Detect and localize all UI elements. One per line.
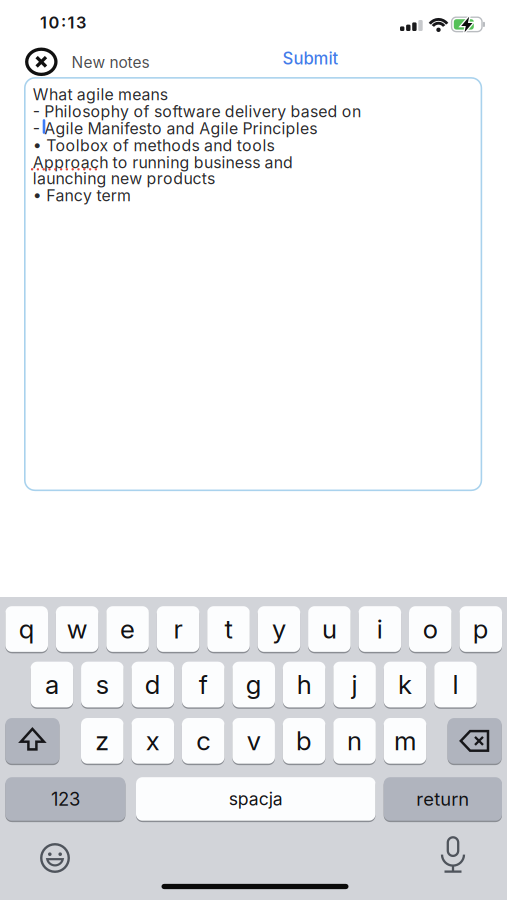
button[interactable]: e — [106, 606, 149, 652]
button[interactable]: s — [81, 662, 124, 707]
staticText: j — [352, 669, 358, 700]
staticText: s — [96, 669, 109, 700]
staticText: Approach to running business and — [33, 153, 293, 172]
button[interactable]: o — [409, 606, 452, 652]
button[interactable]: h — [283, 662, 325, 707]
button[interactable]: l — [434, 662, 477, 707]
staticText: c — [196, 725, 210, 757]
button[interactable]: m — [384, 718, 426, 764]
staticText: w — [67, 613, 88, 645]
staticText: launching new products — [33, 169, 215, 188]
staticText: x — [146, 725, 160, 757]
staticText: l — [452, 669, 458, 700]
staticText: What agile means — [33, 85, 168, 104]
button[interactable]: r — [157, 606, 199, 652]
staticText: o — [423, 613, 438, 645]
button[interactable]: y — [258, 606, 300, 652]
staticText: i — [377, 613, 383, 645]
button[interactable]: b — [283, 718, 325, 764]
button[interactable]: u — [308, 606, 351, 652]
button[interactable]: c — [182, 718, 224, 764]
staticText: f — [199, 669, 208, 700]
button[interactable]: Dictate — [436, 836, 470, 873]
button[interactable]: f — [182, 662, 225, 707]
staticText: spacja — [229, 788, 283, 810]
button[interactable]: j — [333, 662, 376, 707]
staticText: b — [296, 725, 312, 757]
staticText: return — [416, 788, 469, 810]
staticText: - Agile Manifesto and Agile Principles — [33, 119, 317, 138]
button[interactable]: 123 — [5, 777, 125, 821]
staticText: p — [473, 613, 489, 645]
button[interactable]: a — [31, 662, 73, 707]
button[interactable]: z — [81, 718, 124, 764]
staticText: 123 — [51, 788, 80, 810]
staticText: New notes — [71, 53, 149, 72]
staticText: v — [247, 725, 261, 757]
button[interactable]: x — [131, 718, 174, 764]
staticText: m — [394, 725, 416, 757]
button[interactable]: d — [131, 662, 174, 707]
staticText: - Philosophy of software delivery based … — [33, 102, 361, 121]
staticText: q — [19, 613, 35, 645]
button[interactable]: Note text — [25, 78, 481, 490]
staticText: u — [322, 613, 337, 645]
staticText: z — [95, 725, 109, 757]
button[interactable]: return — [384, 777, 502, 821]
staticText: y — [272, 613, 286, 645]
button[interactable]: q — [5, 606, 48, 652]
button[interactable]: spacja — [136, 777, 375, 821]
button[interactable]: Delete — [448, 718, 502, 764]
button[interactable]: p — [459, 606, 502, 652]
staticText: e — [120, 613, 135, 645]
staticText: n — [347, 725, 362, 757]
staticText: h — [297, 669, 312, 700]
staticText: a — [45, 669, 59, 700]
button[interactable]: g — [232, 662, 275, 707]
button[interactable]: t — [207, 606, 250, 652]
button[interactable]: n — [333, 718, 376, 764]
staticText: g — [246, 669, 262, 700]
button[interactable]: i — [359, 606, 401, 652]
staticText: d — [145, 669, 161, 700]
staticText: 10:13 — [40, 13, 86, 32]
button[interactable]: Emoji — [38, 841, 72, 875]
button[interactable]: k — [384, 662, 426, 707]
button[interactable]: Shift — [5, 718, 59, 764]
button[interactable]: Close — [25, 47, 58, 76]
staticText: • Toolbox of methods and tools — [33, 136, 275, 155]
staticText: t — [224, 613, 232, 645]
button[interactable]: w — [56, 606, 98, 652]
button[interactable]: Submit — [282, 48, 338, 69]
staticText: k — [398, 669, 412, 700]
staticText: Submit — [282, 48, 338, 69]
button[interactable]: v — [232, 718, 275, 764]
staticText: • Fancy term — [33, 186, 131, 205]
staticText: r — [174, 613, 183, 645]
